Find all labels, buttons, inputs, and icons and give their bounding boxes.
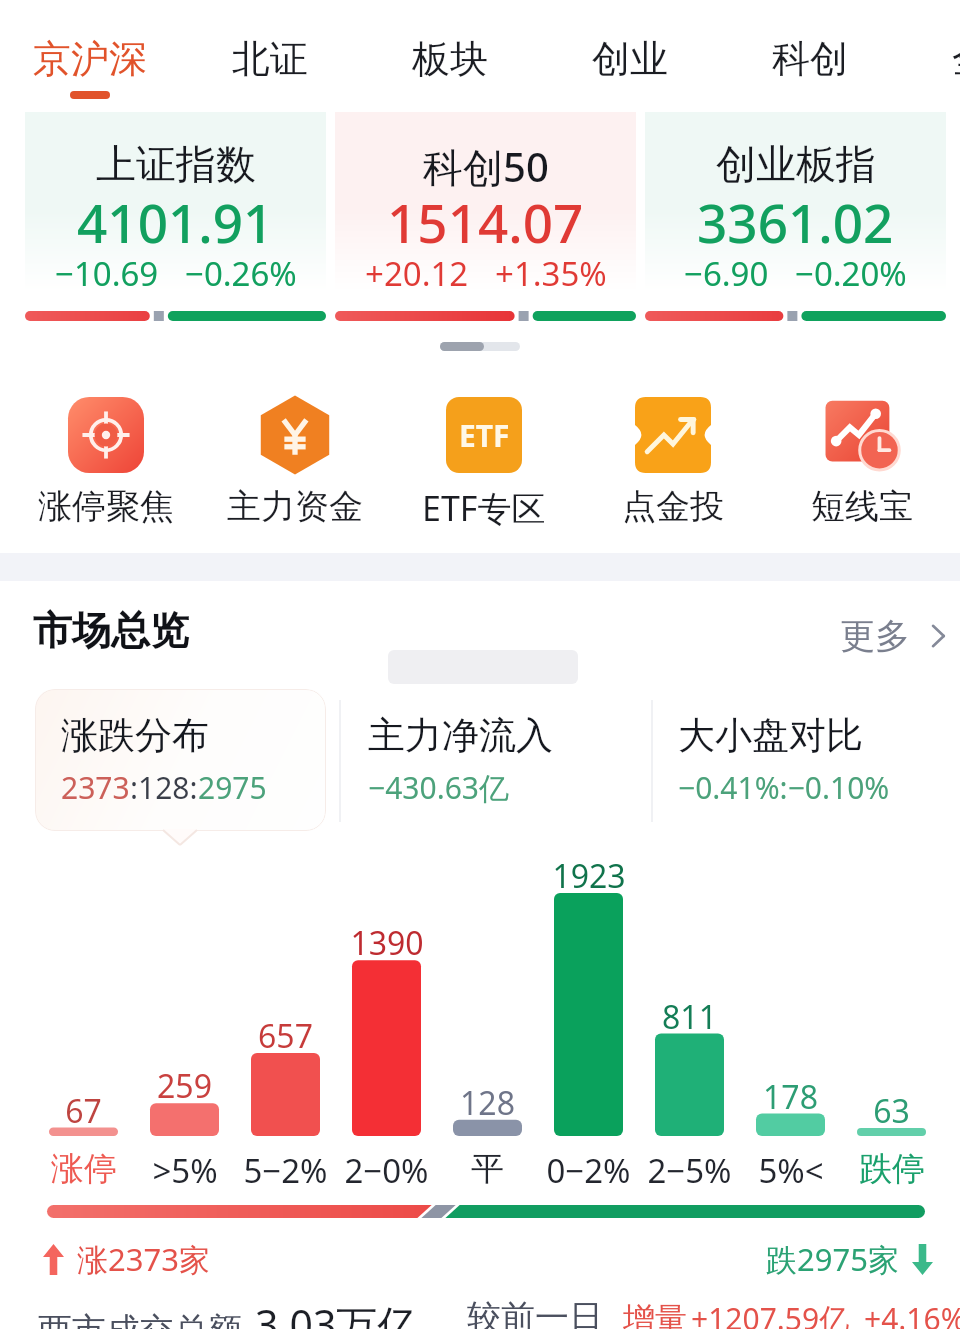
staticText: −6.90 — [684, 251, 769, 296]
staticText: :128: — [130, 767, 198, 808]
staticText: 4101.91 — [77, 186, 274, 258]
other: ETF专区 — [446, 397, 522, 473]
staticText: 更多 — [840, 614, 910, 658]
staticText: 涨跌分布 — [61, 712, 209, 759]
staticText: 657 — [258, 1014, 313, 1058]
staticText: 板块 — [412, 35, 488, 83]
button[interactable]: 涨跌分布 — [37, 690, 317, 832]
button[interactable]: 涨2373家 — [43, 1238, 210, 1280]
staticText: 涨停聚焦 — [38, 485, 174, 528]
button[interactable]: 主力净流入 — [344, 690, 624, 832]
staticText: 全球 — [952, 35, 960, 83]
button[interactable]: 涨停聚焦 — [11, 380, 201, 540]
staticText: 较前一日 — [467, 1296, 603, 1329]
staticText: 市场总览 — [33, 606, 189, 655]
staticText: 67 — [65, 1089, 102, 1133]
staticText: 0−2% — [546, 1148, 631, 1193]
staticText: 128 — [460, 1081, 515, 1125]
button[interactable]: 科创50 — [335, 112, 636, 362]
staticText: 3361.02 — [697, 186, 894, 258]
button[interactable]: 创业 — [540, 0, 720, 110]
staticText: −0.20% — [795, 251, 907, 296]
button[interactable]: 京沪深 — [0, 0, 180, 110]
staticText: 2−0% — [344, 1148, 429, 1193]
staticText: 主力资金 — [227, 485, 363, 528]
staticText: 北证 — [232, 35, 308, 83]
button[interactable]: 大小盘对比 — [654, 690, 934, 832]
staticText: −0.41%:−0.10% — [678, 767, 890, 808]
staticText: 主力净流入 — [368, 712, 553, 759]
button[interactable]: 科创 — [720, 0, 900, 110]
staticText: +1207.59亿 — [691, 1298, 850, 1329]
staticText: 5%< — [758, 1148, 824, 1193]
button[interactable]: 北证 — [180, 0, 360, 110]
staticText: 创业 — [592, 35, 668, 83]
staticText: 2975 — [198, 767, 267, 808]
button[interactable]: 短线宝 — [767, 380, 957, 540]
staticText: 上证指数 — [96, 139, 256, 189]
staticText: 63 — [873, 1089, 910, 1133]
staticText: 3.03万亿 — [255, 1296, 419, 1329]
staticText: 1390 — [350, 921, 424, 965]
staticText: 增量 — [623, 1299, 687, 1329]
staticText: 2−5% — [647, 1148, 732, 1193]
staticText: >5% — [152, 1148, 218, 1193]
other: 短线宝 — [824, 397, 900, 473]
staticText: 2373 — [61, 767, 130, 808]
staticText: 1923 — [552, 854, 626, 898]
button[interactable]: 全球 — [900, 0, 960, 110]
staticText: 1514.07 — [387, 186, 584, 258]
other: 主力资金 — [257, 397, 333, 473]
staticText: 点金投 — [622, 485, 724, 528]
staticText: 平 — [471, 1148, 504, 1190]
button[interactable]: ETF专区 — [389, 380, 579, 540]
staticText: 科创 — [772, 35, 848, 83]
button[interactable]: 跌2975家 — [766, 1238, 933, 1280]
staticText: −10.69 — [55, 251, 159, 296]
staticText: 科创50 — [423, 139, 549, 194]
staticText: 5−2% — [243, 1148, 328, 1193]
button[interactable]: 创业板指 — [645, 112, 946, 362]
button[interactable]: 主力资金 — [200, 380, 390, 540]
staticText: 811 — [662, 995, 717, 1039]
staticText: ETF — [459, 415, 510, 456]
button[interactable]: 点金投 — [578, 380, 768, 540]
staticText: +1.35% — [495, 251, 607, 296]
button[interactable]: 上证指数 — [25, 112, 326, 362]
staticText: 创业板指 — [716, 139, 876, 189]
button[interactable]: 更多 — [834, 608, 960, 664]
other: 涨停聚焦 — [68, 397, 144, 473]
staticText: 259 — [157, 1064, 212, 1108]
staticText: 两市成交总额 — [38, 1309, 242, 1329]
staticText: 大小盘对比 — [678, 712, 863, 759]
staticText: 京沪深 — [33, 35, 147, 83]
staticText: 涨停 — [51, 1148, 117, 1190]
staticText: 178 — [763, 1075, 818, 1119]
staticText: ETF专区 — [422, 485, 546, 531]
staticText: +4.16% — [864, 1298, 960, 1329]
other: 点金投 — [635, 397, 711, 473]
staticText: 短线宝 — [811, 485, 913, 528]
staticText: 跌停 — [859, 1148, 925, 1190]
staticText: −430.63亿 — [368, 767, 509, 808]
staticText: 跌2975家 — [766, 1238, 899, 1280]
staticText: −0.26% — [185, 251, 297, 296]
button[interactable]: 板块 — [360, 0, 540, 110]
staticText: 涨2373家 — [77, 1238, 210, 1280]
staticText: +20.12 — [365, 251, 469, 296]
